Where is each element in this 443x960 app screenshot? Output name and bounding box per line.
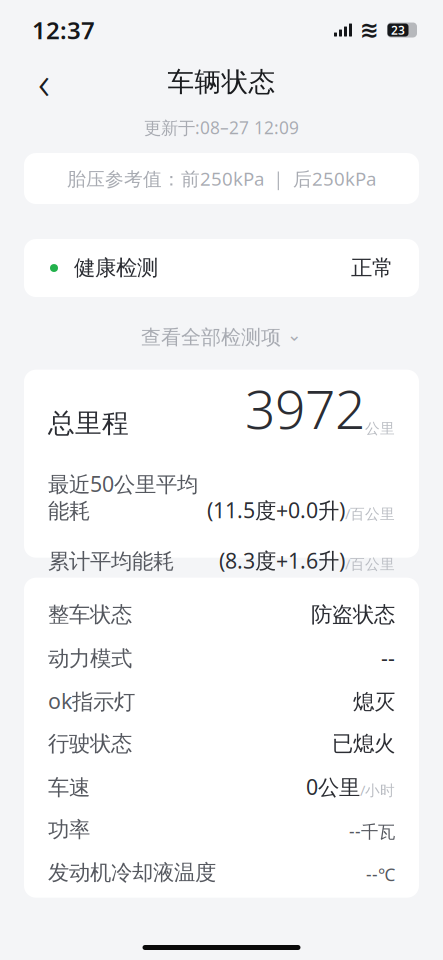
staticText: -- <box>381 643 395 672</box>
staticText: 功率 <box>48 817 90 843</box>
staticText: 23 <box>391 22 405 38</box>
staticText: 车速 <box>48 775 90 801</box>
staticText: 胎压参考值：前250kPa ｜ 后250kPa <box>67 166 376 191</box>
staticText: 总里程 <box>48 407 129 440</box>
staticText: 0公里 <box>306 772 360 801</box>
staticText: 最近50公里平均能耗 <box>48 470 198 524</box>
button[interactable]: 健康检测 <box>24 239 419 297</box>
staticText: (11.5度+0.0升) <box>207 496 345 524</box>
staticText: 12:37 <box>32 14 95 46</box>
staticText: 整车状态 <box>48 602 132 628</box>
staticText: 更新于:08–27 12:09 <box>144 116 299 139</box>
staticText: 熄灭 <box>353 689 395 715</box>
button[interactable]: 查看全部检测项 <box>131 317 312 358</box>
staticText: /百公里 <box>345 554 395 574</box>
staticText: ‹ <box>38 52 50 112</box>
staticText: 已熄火 <box>332 731 395 757</box>
staticText: --℃ <box>366 863 395 886</box>
staticText: 查看全部检测项 <box>141 325 281 350</box>
staticText: 3972 <box>245 373 365 444</box>
staticText: 公里 <box>365 420 395 438</box>
staticText: 健康检测 <box>74 255 158 281</box>
staticText: 正常 <box>351 255 393 281</box>
staticText: --千瓦 <box>349 820 395 843</box>
staticText: /百公里 <box>345 504 395 523</box>
staticText: 防盗状态 <box>311 602 395 628</box>
staticText: ⌄ <box>287 325 302 345</box>
staticText: 发动机冷却液温度 <box>48 860 216 886</box>
staticText: 车辆状态 <box>167 66 275 98</box>
staticText: ≋ <box>360 17 379 43</box>
staticText: (8.3度+1.6升) <box>219 546 345 574</box>
staticText: 累计平均能耗 <box>48 548 174 574</box>
staticText: /小时 <box>360 780 395 800</box>
staticText: 动力模式 <box>48 646 132 672</box>
staticText: ok指示灯 <box>48 686 135 715</box>
button[interactable]: Back <box>22 60 66 104</box>
staticText: 行驶状态 <box>48 731 132 757</box>
